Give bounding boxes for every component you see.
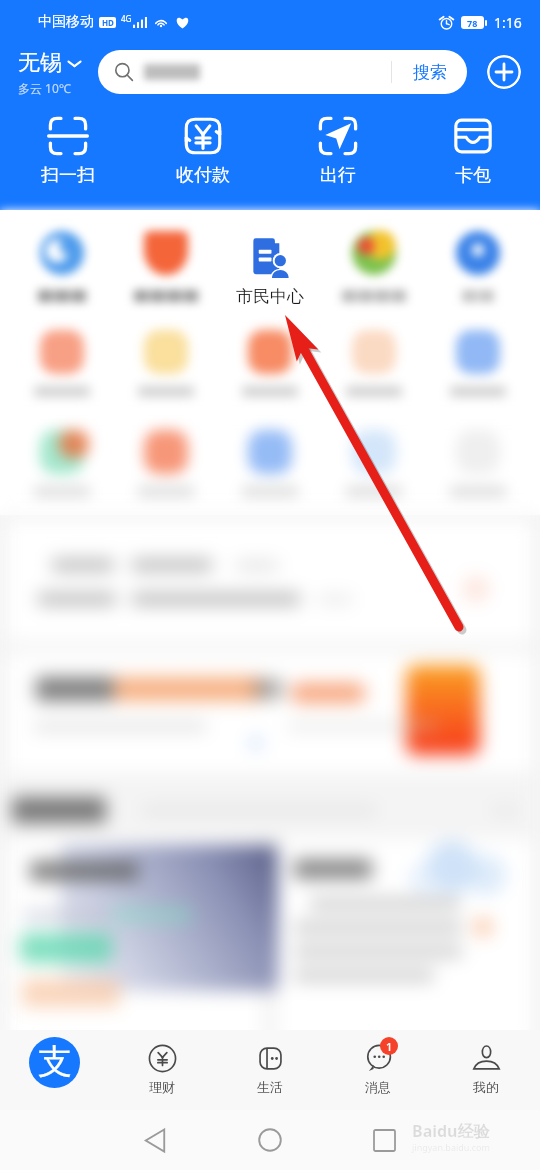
button[interactable]: 搜索: [392, 50, 467, 94]
button[interactable]: 生活: [216, 1030, 324, 1110]
staticText: 1:16: [494, 13, 522, 32]
button[interactable]: 收付款: [135, 112, 270, 189]
staticText: Baidu经验: [412, 1120, 490, 1142]
staticText: HD: [102, 17, 114, 28]
staticText: 支: [38, 1040, 72, 1083]
button[interactable]: 搜索: [98, 50, 467, 94]
button[interactable]: 首页: [0, 1030, 108, 1110]
staticText: 消息: [365, 1079, 391, 1095]
staticText: 收付款: [176, 164, 230, 187]
staticText: 4G: [121, 13, 132, 24]
staticText: jingyan.baidu.com: [412, 1141, 490, 1153]
staticText: 搜索: [413, 62, 447, 83]
staticText: 无锡: [18, 49, 62, 77]
staticText: 市民中心: [236, 286, 304, 307]
button[interactable]: 理财: [108, 1030, 216, 1110]
button[interactable]: 主页: [242, 1110, 298, 1170]
button[interactable]: 我的: [432, 1030, 540, 1110]
staticText: 中国移动: [38, 13, 94, 31]
button[interactable]: 返回: [127, 1110, 183, 1170]
button[interactable]: 最近任务: [356, 1110, 412, 1170]
button[interactable]: 市民中心: [232, 232, 308, 307]
staticText: 多云 10℃: [18, 80, 71, 96]
button[interactable]: 卡包: [405, 112, 540, 189]
staticText: 扫一扫: [41, 164, 95, 187]
staticText: 1: [386, 1039, 393, 1054]
staticText: 理财: [149, 1079, 175, 1095]
button[interactable]: 添加: [487, 55, 521, 89]
staticText: 出行: [320, 164, 356, 187]
staticText: 我的: [473, 1079, 499, 1095]
button[interactable]: 1: [324, 1030, 432, 1110]
button[interactable]: 扫一扫: [0, 112, 135, 189]
button[interactable]: 出行: [270, 112, 405, 189]
staticText: 78: [467, 17, 478, 29]
staticText: 生活: [257, 1079, 283, 1095]
button[interactable]: 无锡: [15, 49, 85, 96]
staticText: 卡包: [455, 164, 491, 187]
